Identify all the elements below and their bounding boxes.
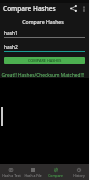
button[interactable]: Compare Hash... <box>44 164 67 180</box>
staticText: History <box>73 173 85 178</box>
button[interactable]: COMPARE HASHES <box>4 57 85 64</box>
button[interactable]: Share <box>69 4 78 13</box>
staticText: Compare Hashes <box>3 4 56 13</box>
staticText: Compare Hash... <box>44 173 67 178</box>
button[interactable]: Hash a File <box>22 164 44 180</box>
staticText: Compare Hashes <box>0 18 86 25</box>
staticText: hash1 <box>4 30 18 37</box>
staticText: hash2 <box>4 44 18 51</box>
button[interactable]: Hash a Text <box>0 164 22 180</box>
button[interactable]: hash1 <box>4 30 85 38</box>
staticText: COMPARE HASHES <box>28 58 62 63</box>
staticText: Hash a File <box>24 173 42 178</box>
button[interactable]: History <box>67 164 90 180</box>
staticText: Great!! Hashes/Checksum Matched!!! <box>0 72 86 79</box>
staticText: Hash a Text <box>2 173 21 178</box>
button[interactable]: More options <box>79 4 88 13</box>
button[interactable]: hash2 <box>4 44 85 52</box>
